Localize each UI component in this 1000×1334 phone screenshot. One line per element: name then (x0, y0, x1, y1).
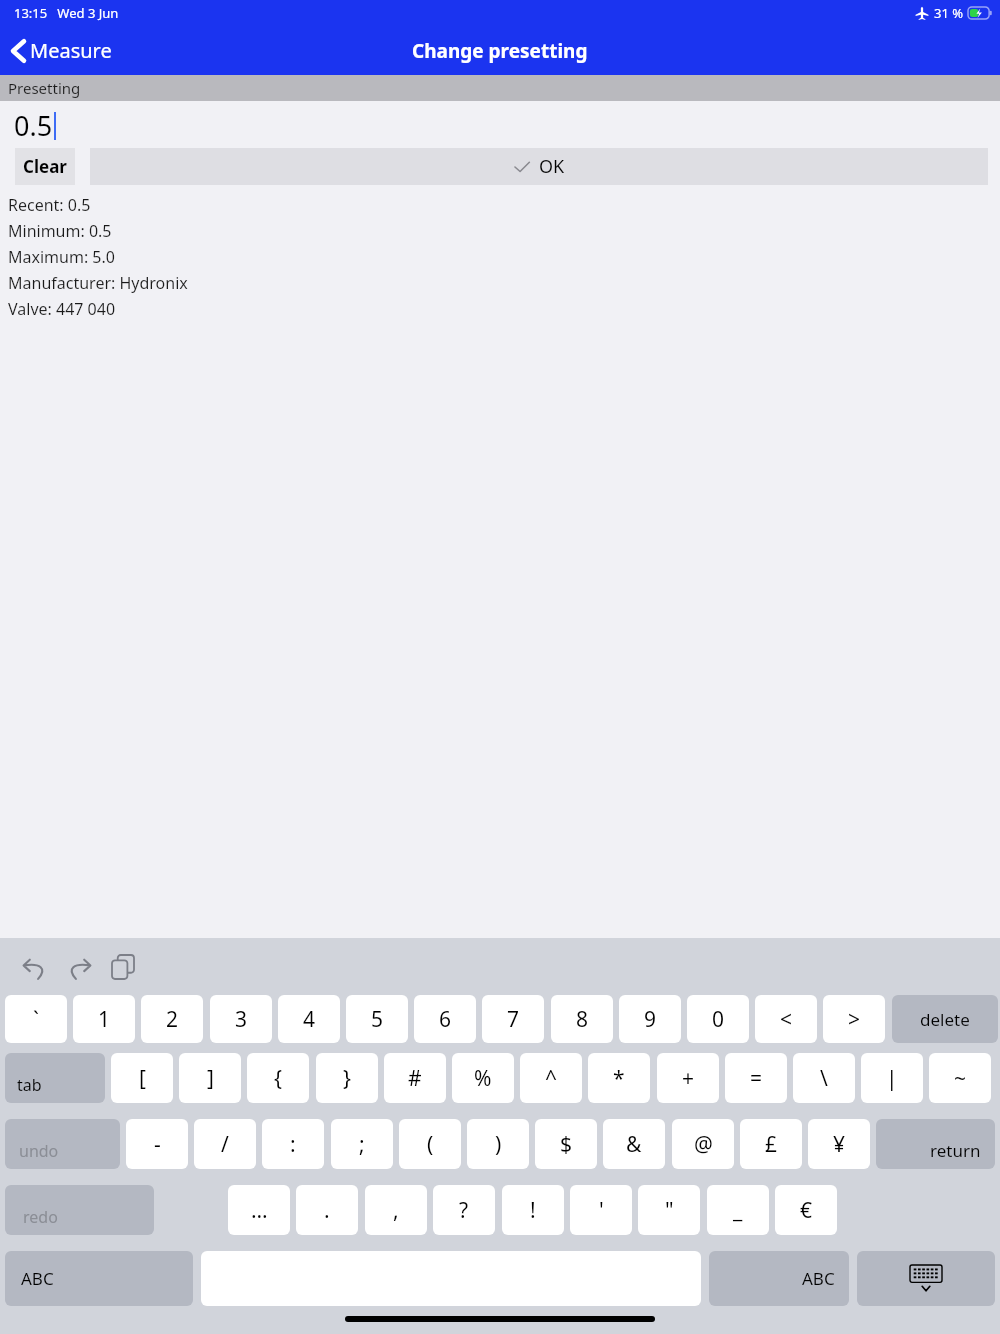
staticText: _ (733, 1196, 743, 1225)
button[interactable]: Clear (15, 148, 75, 185)
staticText: ) (495, 1130, 502, 1159)
button[interactable]: * (588, 1053, 650, 1103)
staticText: & (626, 1130, 642, 1159)
button[interactable]: OK (90, 148, 988, 185)
staticText: Maximum: 5.0 (8, 246, 115, 268)
button[interactable]: 3 (210, 995, 272, 1043)
staticText: ~ (954, 1064, 967, 1093)
button[interactable]: : (262, 1119, 324, 1169)
button[interactable]: Undo (18, 951, 52, 985)
button[interactable]: . (296, 1185, 358, 1235)
staticText: Recent: 0.5 (8, 194, 91, 216)
button[interactable]: 5 (346, 995, 408, 1043)
button[interactable]: ABC (5, 1251, 193, 1306)
button[interactable]: ABC (709, 1251, 849, 1306)
staticText: $ (560, 1130, 573, 1159)
staticText: Presetting (8, 78, 81, 98)
button[interactable]: redo (5, 1185, 154, 1235)
button[interactable]: 1 (73, 995, 135, 1043)
staticText: [ (139, 1064, 146, 1093)
staticText: OK (539, 154, 565, 179)
button[interactable]: ' (570, 1185, 632, 1235)
button[interactable]: ; (331, 1119, 393, 1169)
staticText: ! (530, 1196, 536, 1225)
button[interactable]: ) (467, 1119, 529, 1169)
button[interactable]: 2 (141, 995, 203, 1043)
staticText: ABC (21, 1267, 54, 1290)
staticText: … (251, 1196, 268, 1225)
button[interactable]: _ (707, 1185, 769, 1235)
button[interactable]: / (194, 1119, 256, 1169)
button[interactable]: € (775, 1185, 837, 1235)
staticText: Minimum: 0.5 (8, 220, 112, 242)
button[interactable]: # (384, 1053, 446, 1103)
button[interactable]: & (603, 1119, 665, 1169)
staticText: 7 (507, 1005, 520, 1034)
button[interactable]: % (452, 1053, 514, 1103)
button[interactable]: 8 (551, 995, 613, 1043)
staticText: / (221, 1130, 229, 1159)
button[interactable]: Hide keyboard (857, 1251, 995, 1306)
staticText: 1 (98, 1005, 111, 1034)
staticText: + (682, 1064, 695, 1093)
staticText: tab (17, 1074, 42, 1096)
button[interactable]: - (126, 1119, 188, 1169)
button[interactable]: @ (672, 1119, 734, 1169)
button[interactable]: | (861, 1053, 923, 1103)
button[interactable]: return (876, 1119, 995, 1169)
button[interactable]: ¥ (808, 1119, 870, 1169)
staticText: ABC (802, 1267, 835, 1290)
button[interactable]: £ (740, 1119, 802, 1169)
staticText: 0 (712, 1005, 725, 1034)
button[interactable]: ` (5, 995, 67, 1043)
button[interactable]: ~ (929, 1053, 991, 1103)
staticText: = (750, 1064, 763, 1093)
staticText: Clear (23, 155, 67, 178)
staticText: Measure (30, 37, 112, 64)
button[interactable]: ^ (520, 1053, 582, 1103)
button[interactable]: 9 (619, 995, 681, 1043)
button[interactable]: delete (892, 995, 998, 1043)
button[interactable]: " (638, 1185, 700, 1235)
button[interactable]: Paste (106, 950, 140, 984)
button[interactable]: + (657, 1053, 719, 1103)
staticText: * (613, 1064, 625, 1093)
button[interactable]: < (755, 995, 817, 1043)
button[interactable]: = (725, 1053, 787, 1103)
button[interactable]: ] (179, 1053, 241, 1103)
button[interactable]: $ (535, 1119, 597, 1169)
button[interactable]: Redo (62, 951, 96, 985)
staticText: 3 (235, 1005, 248, 1034)
button[interactable]: 7 (482, 995, 544, 1043)
staticText: £ (765, 1130, 778, 1159)
button[interactable]: ? (433, 1185, 495, 1235)
button[interactable]: ! (502, 1185, 564, 1235)
staticText: \ (820, 1064, 828, 1093)
button[interactable]: Measure (8, 31, 116, 70)
button[interactable]: [ (111, 1053, 173, 1103)
staticText: ] (207, 1064, 214, 1093)
button[interactable]: tab (5, 1053, 105, 1103)
button[interactable]: undo (5, 1119, 120, 1169)
button[interactable]: \ (793, 1053, 855, 1103)
staticText: ( (427, 1130, 434, 1159)
button[interactable]: > (823, 995, 885, 1043)
button[interactable]: { (247, 1053, 309, 1103)
button[interactable]: 6 (414, 995, 476, 1043)
staticText: 13:15 Wed 3 Jun (14, 4, 119, 22)
staticText: > (848, 1005, 861, 1034)
staticText: . (324, 1196, 330, 1225)
button[interactable]: } (316, 1053, 378, 1103)
staticText: 0.5 (14, 107, 53, 144)
staticText: < (780, 1005, 793, 1034)
staticText: % (474, 1064, 492, 1093)
button[interactable]: 0 (687, 995, 749, 1043)
button[interactable]: 4 (278, 995, 340, 1043)
staticText: Change presetting (412, 38, 588, 64)
button[interactable]: , (365, 1185, 427, 1235)
button[interactable]: … (228, 1185, 290, 1235)
button[interactable]: ( (399, 1119, 461, 1169)
staticText: { (274, 1064, 282, 1093)
staticText: ` (33, 1005, 39, 1034)
